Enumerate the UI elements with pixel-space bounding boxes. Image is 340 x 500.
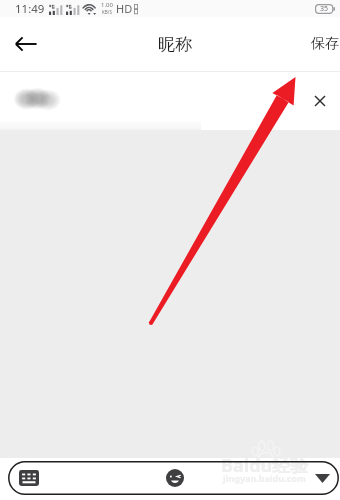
button[interactable]: Emoji [163,466,187,490]
staticText: HD [116,1,133,16]
button[interactable]: Back [1,19,51,69]
staticText: 昵称 [158,34,192,55]
staticText: 35 [320,4,329,14]
staticText: 1.00 [101,1,113,9]
staticText: jingyan.baidu.com [223,472,306,484]
staticText: Baidu经验 [221,453,309,478]
staticText: 保存 [311,35,339,53]
button[interactable]: Keyboard [16,467,42,489]
staticText: 11:49 [15,1,45,17]
button[interactable]: Hide keyboard [311,467,333,489]
button[interactable]: 保存 [299,21,340,67]
staticText: KB/S [102,9,112,15]
button[interactable]: Clear text [306,87,334,115]
